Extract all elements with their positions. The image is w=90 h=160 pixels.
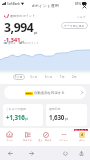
staticText: 運用可能 [49, 107, 61, 111]
button[interactable]: 3ヶ月 [28, 74, 40, 80]
staticText: ホーム [6, 139, 13, 142]
staticText: 自動追加を設定する [34, 91, 65, 95]
staticText: +1,316 [6, 113, 25, 121]
staticText: 1年 [60, 75, 65, 79]
staticText: dポイント運用 [32, 3, 59, 8]
button[interactable]: 2年 [70, 74, 79, 80]
staticText: 3,994 [4, 19, 34, 36]
button[interactable]: 使う・貯める [36, 128, 54, 146]
staticText: キャンペーン [75, 129, 87, 131]
button[interactable]: メニュー [54, 128, 72, 146]
button[interactable]: これまでの運用 [3, 104, 43, 126]
staticText: 読みとる [23, 139, 32, 142]
button[interactable]: 進む [27, 149, 35, 157]
staticText: 使う・貯める [38, 139, 52, 142]
staticText: 1,630 [49, 113, 65, 121]
staticText: 元のポイント [23, 41, 39, 44]
button[interactable]: ヘルプ [77, 15, 86, 19]
staticText: d払い [79, 139, 85, 142]
staticText: pt [65, 117, 68, 121]
button[interactable]: 読みとる [18, 128, 36, 146]
staticText: pt [34, 31, 38, 35]
staticText: 2年 [72, 75, 77, 79]
button[interactable]: 6ヶ月 [43, 74, 55, 80]
staticText: 6ヶ月 [45, 75, 53, 79]
staticText: ヘルプ [77, 15, 86, 19]
button[interactable]: NEW [4, 86, 86, 99]
staticText: d [81, 133, 84, 137]
staticText: -1,341 [4, 36, 21, 44]
button[interactable]: 戻る [6, 149, 14, 157]
staticText: 運用中のポイント [10, 14, 36, 18]
button[interactable]: d [72, 128, 90, 146]
staticText: NEW [26, 92, 32, 95]
button[interactable]: 運用可能 [46, 104, 87, 126]
button[interactable]: 1年 [58, 74, 67, 80]
staticText: SoftBank [7, 2, 20, 6]
staticText: テーマ別に見る [64, 24, 85, 28]
button[interactable]: 再読み込み [61, 149, 69, 157]
staticText: 運用中 [8, 41, 16, 44]
button[interactable]: ホーム [0, 128, 18, 146]
staticText: 3ヶ月 [30, 75, 38, 79]
button[interactable]: 1ヶ月 [13, 74, 25, 80]
button[interactable]: テーマ別に見る [61, 22, 88, 29]
staticText: 1ヶ月 [15, 75, 23, 79]
staticText: pt [21, 40, 24, 44]
button[interactable]: 閉じる [81, 3, 87, 9]
button[interactable]: 共有 [77, 149, 85, 157]
staticText: 85% [75, 2, 81, 6]
staticText: メニュー [59, 139, 68, 142]
staticText: これまでの運用 [6, 107, 26, 111]
staticText: pt [25, 117, 28, 121]
